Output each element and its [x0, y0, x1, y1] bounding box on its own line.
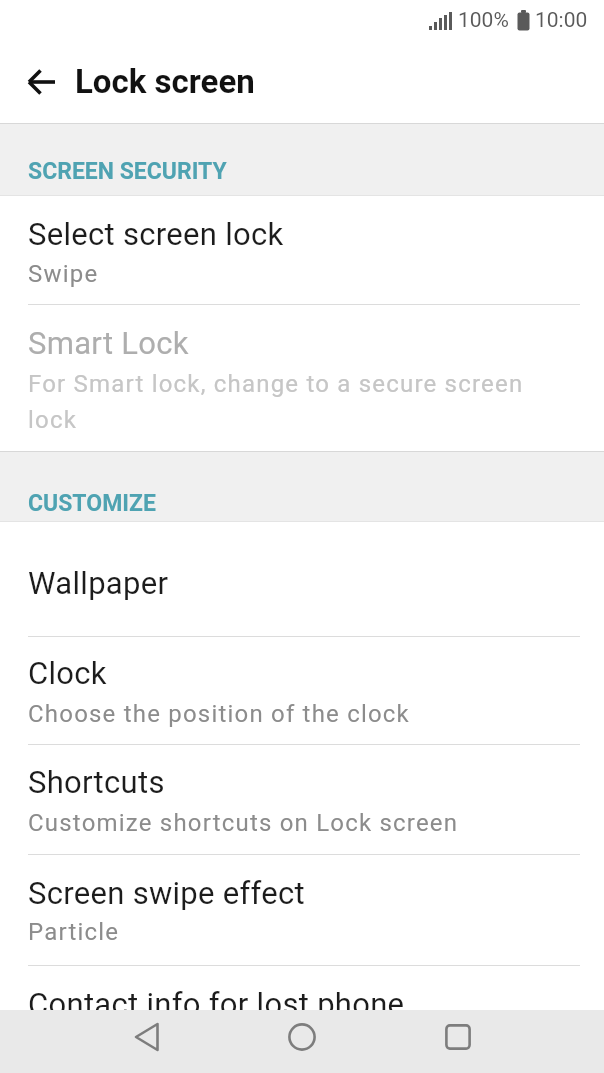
staticText: Lock screen: [75, 62, 255, 101]
staticText: SCREEN SECURITY: [28, 158, 227, 185]
button[interactable]: [26, 66, 58, 98]
staticText: Smart Lock: [28, 325, 189, 361]
staticText: Wallpaper: [28, 565, 169, 601]
button[interactable]: Select screen lock: [0, 196, 604, 305]
staticText: Select screen lock: [28, 216, 284, 252]
button[interactable]: [202, 1010, 403, 1073]
staticText: Contact info for lost phone: [28, 986, 405, 1022]
staticText: Swipe: [28, 260, 99, 288]
staticText: Shortcuts: [28, 764, 165, 800]
button[interactable]: [0, 1010, 202, 1073]
button[interactable]: Wallpaper: [0, 522, 604, 637]
staticText: 100%: [458, 8, 509, 33]
staticText: CUSTOMIZE: [28, 490, 156, 517]
button[interactable]: Screen swipe effect: [0, 855, 604, 966]
staticText: Screen swipe effect: [28, 875, 306, 911]
staticText: Clock: [28, 655, 107, 691]
staticText: Customize shortcuts on Lock screen: [28, 809, 459, 837]
staticText: 10:00: [535, 8, 588, 33]
button[interactable]: Contact info for lost phone: [0, 966, 604, 1073]
staticText: For Smart lock, change to a secure scree…: [28, 370, 524, 434]
staticText: Choose the position of the clock: [28, 700, 410, 728]
button[interactable]: Smart Lock: [0, 305, 604, 451]
staticText: Particle: [28, 918, 120, 946]
button[interactable]: Clock: [0, 637, 604, 745]
button[interactable]: Shortcuts: [0, 745, 604, 855]
button[interactable]: [403, 1010, 604, 1073]
